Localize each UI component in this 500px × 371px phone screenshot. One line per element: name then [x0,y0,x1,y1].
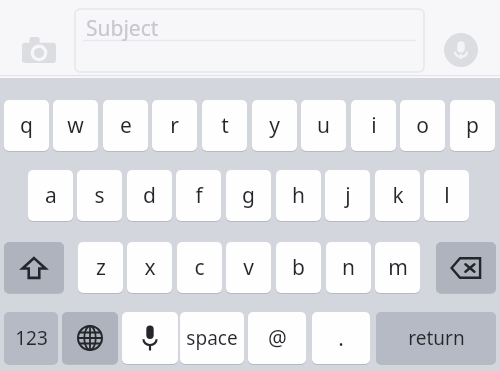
button[interactable]: @ [248,312,306,364]
button[interactable]: return [376,312,496,364]
staticText: k [392,181,404,210]
button[interactable]: c [177,242,222,293]
staticText: y [269,111,280,140]
staticText: f [195,181,203,210]
button[interactable]: u [301,100,346,151]
button[interactable]: y [252,100,297,151]
button[interactable]: l [424,170,469,221]
button[interactable]: Voice input [444,33,478,67]
staticText: a [45,181,57,210]
button[interactable]: Take photo [18,32,60,68]
button[interactable]: d [127,170,172,221]
staticText: @ [268,324,287,353]
staticText: space [186,325,238,351]
button[interactable]: z [78,242,123,293]
staticText: i [371,111,377,140]
other: Voice typing [122,312,178,364]
button[interactable]: o [400,100,445,151]
other: Shift [4,242,64,293]
staticText: b [292,253,305,282]
button[interactable]: a [28,170,73,221]
button[interactable] [122,312,178,364]
button[interactable]: m [375,242,420,293]
button[interactable] [4,242,64,293]
button[interactable]: . [312,312,370,364]
staticText: l [444,181,450,210]
button[interactable]: x [127,242,172,293]
staticText: o [416,111,429,140]
button[interactable]: f [176,170,221,221]
staticText: d [143,181,156,210]
staticText: z [96,253,106,282]
staticText: t [221,111,229,140]
button[interactable]: j [325,170,370,221]
staticText: u [317,111,330,140]
staticText: w [67,111,84,140]
button[interactable]: p [450,100,495,151]
staticText: 123 [15,325,48,351]
staticText: j [345,181,351,210]
staticText: h [292,181,305,210]
staticText: m [388,253,408,282]
staticText: n [342,253,355,282]
staticText: p [466,111,479,140]
button[interactable]: Subject [75,9,424,72]
staticText: s [94,181,105,210]
button[interactable]: q [4,100,49,151]
staticText: v [243,253,254,282]
other: Backspace [436,242,496,293]
button[interactable]: n [326,242,371,293]
staticText: x [144,253,156,282]
button[interactable]: e [103,100,148,151]
button[interactable]: space [180,312,244,364]
staticText: return [408,325,465,351]
button[interactable]: s [77,170,122,221]
button[interactable] [62,312,118,364]
button[interactable]: g [226,170,271,221]
button[interactable]: v [226,242,271,293]
staticText: Subject [86,14,159,43]
button[interactable]: b [276,242,321,293]
button[interactable]: 123 [4,312,58,364]
other: Change keyboard [62,312,118,364]
staticText: . [338,324,344,353]
staticText: r [170,111,179,140]
staticText: e [120,111,132,140]
button[interactable]: t [202,100,247,151]
button[interactable] [436,242,496,293]
staticText: g [242,181,255,210]
button[interactable]: r [152,100,197,151]
button[interactable]: h [276,170,321,221]
button[interactable]: k [375,170,420,221]
button[interactable]: i [351,100,396,151]
staticText: c [194,253,205,282]
staticText: q [20,111,33,140]
button[interactable]: w [53,100,98,151]
